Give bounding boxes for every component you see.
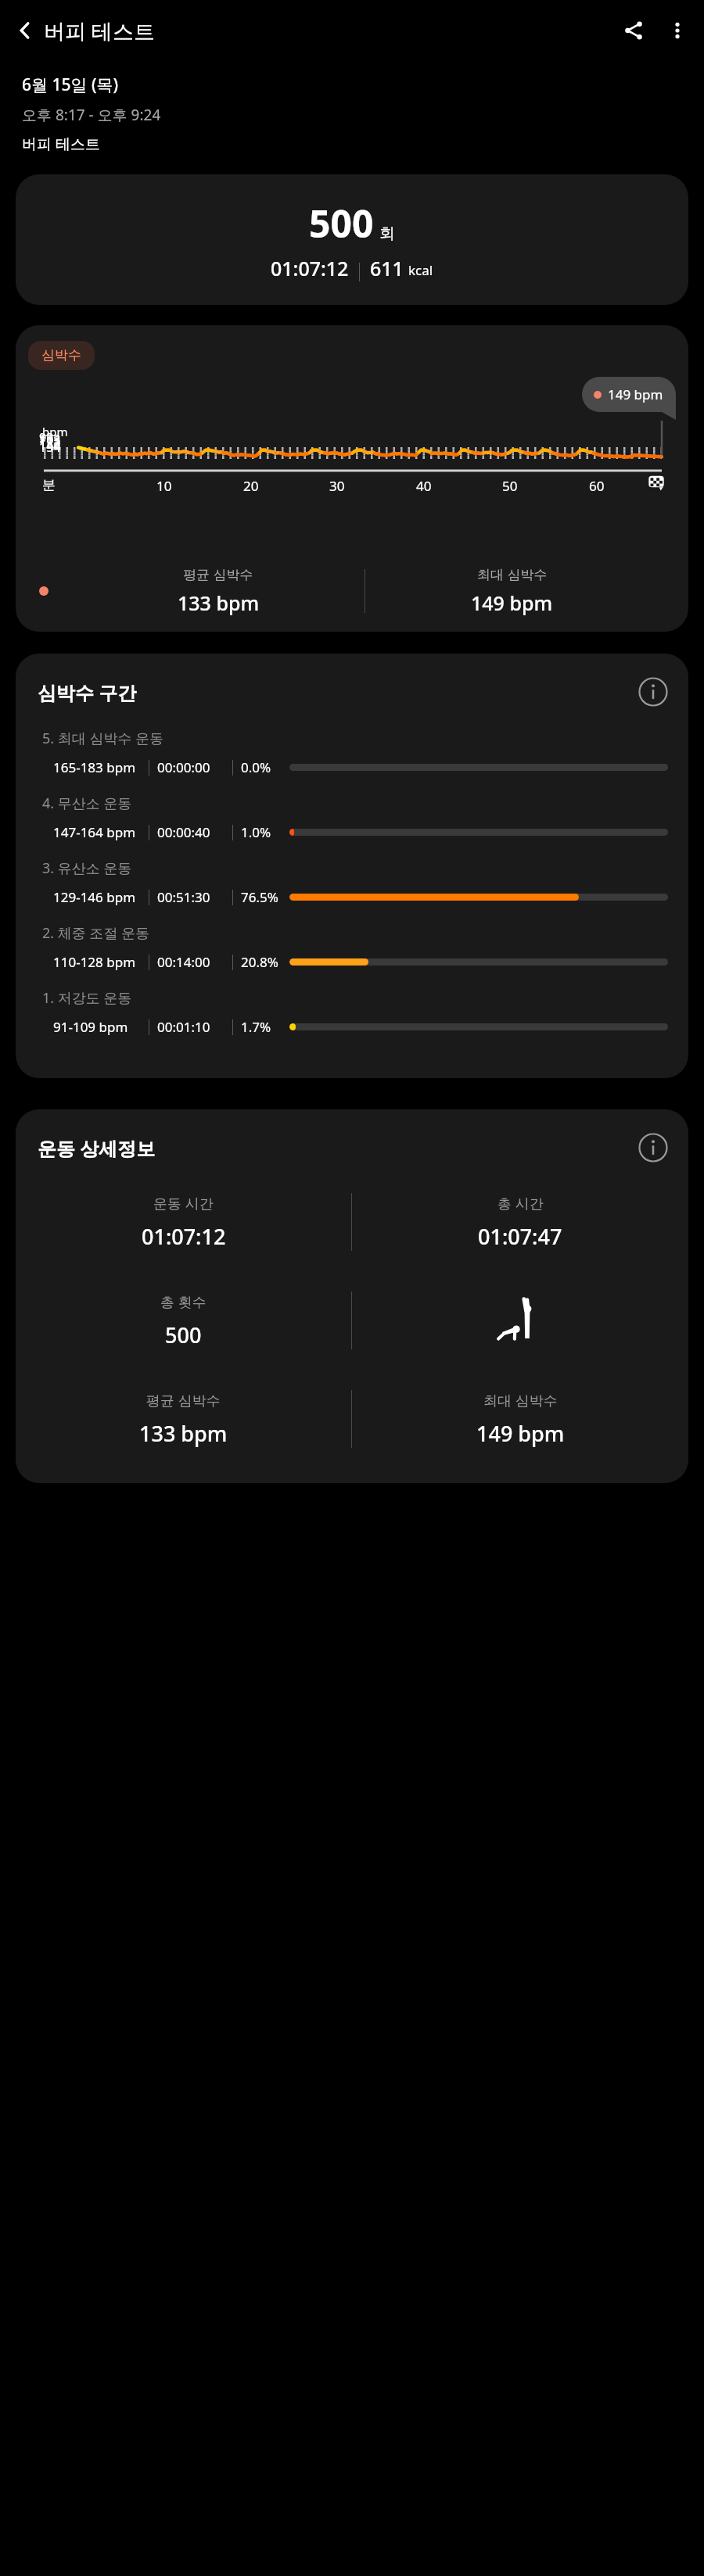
staticText: 93 — [39, 429, 54, 446]
button[interactable]: 심박수 구간 — [16, 654, 688, 1078]
staticText: 최대 심박수 — [483, 1391, 558, 1410]
staticText: 총 횟수 — [160, 1292, 207, 1312]
staticText: 4. 무산소 운동 — [42, 794, 132, 813]
staticText: 최대 심박수 — [477, 565, 548, 583]
staticText: 500 — [165, 1320, 202, 1349]
staticText: kcal — [408, 261, 433, 279]
staticText: 110-128 bpm — [53, 953, 149, 971]
staticText: 평균 심박수 — [146, 1391, 221, 1410]
staticText: 01:07:12 — [142, 1222, 226, 1251]
staticText: 20 — [243, 477, 259, 495]
staticText: 오후 8:17 - 오후 9:24 — [22, 105, 161, 125]
staticText: 30 — [329, 477, 345, 495]
staticText: 165-183 bpm — [53, 758, 149, 776]
staticText: 149 bpm — [471, 589, 553, 616]
button[interactable]: Back — [3, 9, 47, 52]
staticText: 00:01:10 — [157, 1018, 232, 1036]
staticText: 50 — [502, 477, 518, 495]
staticText: 분 — [42, 477, 56, 493]
staticText: 123 — [39, 434, 61, 451]
staticText: 149 bpm — [608, 385, 663, 403]
staticText: 버피 테스트 — [22, 134, 100, 154]
staticText: 심박수 — [41, 347, 81, 364]
staticText: 113 — [39, 432, 61, 450]
staticText: 1. 저강도 운동 — [42, 988, 132, 1008]
staticText: 40 — [416, 477, 432, 495]
staticText: 회 — [379, 224, 395, 243]
staticText: 3. 유산소 운동 — [42, 858, 132, 878]
staticText: 1.7% — [241, 1018, 286, 1036]
staticText: 00:14:00 — [157, 953, 232, 971]
staticText: 2. 체중 조절 운동 — [42, 923, 150, 943]
staticText: 133 bpm — [139, 1419, 228, 1448]
staticText: 00:51:30 — [157, 888, 232, 906]
button[interactable]: 운동 상세정보 — [16, 1109, 688, 1483]
staticText: 00:00:00 — [157, 758, 232, 776]
staticText: 20.8% — [241, 953, 286, 971]
staticText: 133 bpm — [178, 589, 260, 616]
staticText: 144 — [39, 437, 61, 454]
button[interactable]: 심박수 — [16, 325, 688, 632]
staticText: 심박수 구간 — [38, 679, 137, 705]
staticText: 91-109 bpm — [53, 1018, 149, 1036]
staticText: 6월 15일 (목) — [22, 73, 119, 96]
staticText: 00:00:40 — [157, 823, 232, 841]
staticText: 운동 시간 — [153, 1194, 214, 1213]
staticText: 0.0% — [241, 758, 286, 776]
staticText: 5. 최대 심박수 운동 — [42, 729, 164, 748]
staticText: 60 — [589, 477, 605, 495]
staticText: 500 — [309, 198, 374, 249]
staticText: 01:07:47 — [478, 1222, 562, 1251]
button[interactable]: Share — [612, 9, 656, 52]
staticText: 총 시간 — [497, 1194, 544, 1213]
staticText: 10 — [156, 477, 172, 495]
staticText: 1.0% — [241, 823, 286, 841]
staticText: 147-164 bpm — [53, 823, 149, 841]
button[interactable]: Information — [635, 1130, 671, 1166]
button[interactable]: 500 — [16, 174, 688, 305]
staticText: 103 — [39, 431, 61, 448]
staticText: 611 — [370, 255, 404, 281]
staticText: 운동 상세정보 — [38, 1135, 156, 1161]
staticText: 133 — [39, 435, 61, 453]
button[interactable]: Information — [635, 674, 671, 710]
staticText: 154 — [39, 439, 61, 456]
staticText: 01:07:12 — [271, 255, 349, 281]
staticText: 76.5% — [241, 888, 286, 906]
staticText: bpm — [42, 424, 68, 439]
button[interactable]: 심박수 — [28, 341, 95, 370]
staticText: 149 bpm — [476, 1419, 565, 1448]
staticText: 버피 테스트 — [44, 16, 156, 45]
staticText: 평균 심박수 — [183, 565, 253, 583]
button[interactable]: More options — [656, 9, 699, 52]
staticText: 129-146 bpm — [53, 888, 149, 906]
